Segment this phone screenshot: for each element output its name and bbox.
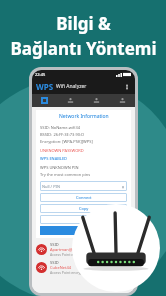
button[interactable] — [40, 215, 127, 224]
staticText: Encryption: [WPA-PSK][WPS] — [40, 139, 93, 144]
button[interactable]: Tab 4 — [109, 94, 135, 107]
button[interactable]: Tab 3 — [83, 94, 109, 107]
button[interactable]: Tab 1 — [32, 94, 57, 107]
staticText: WPS ENABLED — [40, 156, 68, 161]
staticText: Copy — [79, 206, 89, 211]
button[interactable]: Connect — [40, 193, 127, 202]
staticText: Null / PIN — [42, 184, 60, 189]
button[interactable]: Tab 2 — [57, 94, 83, 107]
staticText: SSID — [50, 260, 59, 265]
staticText: WPS UNKNOWN PIN — [40, 165, 79, 170]
staticText: 22:45 — [35, 72, 46, 77]
staticText: Bilgi & — [56, 12, 111, 35]
button[interactable]: SSID — [36, 242, 131, 257]
button[interactable] — [40, 226, 127, 235]
staticText: Bağlantı Yöntemi — [10, 37, 157, 60]
staticText: Connect — [76, 195, 92, 200]
staticText: Access Point encrypted — [50, 270, 88, 275]
button[interactable]: Copy — [40, 204, 127, 213]
staticText: SSID: NoName-wifi34 — [40, 125, 80, 130]
staticText: UNKNOWN PASSWORD — [40, 148, 84, 153]
staticText: Apartman@Home — [50, 247, 84, 252]
staticText: BSSID: 26:FF:3E:73:90:D — [40, 132, 85, 137]
staticText: SSID — [50, 242, 59, 247]
button[interactable]: More options — [123, 83, 131, 91]
staticText: Wifi Analyzer — [56, 83, 87, 90]
button[interactable]: SSID — [36, 260, 131, 275]
staticText: Network Information — [59, 113, 109, 120]
button[interactable]: Null / PIN — [40, 181, 127, 191]
staticText: Access Point encrypted — [50, 252, 88, 257]
staticText: Try the most common pins — [40, 172, 91, 177]
staticText: WPS — [36, 81, 54, 92]
staticText: CubeNet44 — [50, 265, 72, 270]
